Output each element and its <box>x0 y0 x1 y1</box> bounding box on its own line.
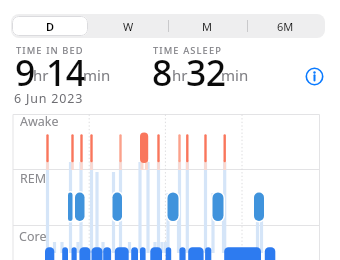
staticText: W <box>123 19 134 34</box>
staticText: 9 <box>15 48 35 96</box>
staticText: TIME IN BED <box>16 44 84 57</box>
staticText: Awake <box>20 113 59 130</box>
button[interactable]: 6M <box>246 14 325 38</box>
button[interactable]: W <box>89 14 167 38</box>
staticText: 32 <box>186 48 226 96</box>
staticText: hr <box>33 65 49 85</box>
staticText: D <box>46 19 55 34</box>
staticText: 6M <box>277 19 294 34</box>
staticText: TIME ASLEEP <box>153 44 222 57</box>
button[interactable]: D <box>11 14 89 38</box>
staticText: Core <box>19 228 47 245</box>
staticText: 8 <box>152 48 172 96</box>
staticText: min <box>83 65 111 85</box>
staticText: hr <box>172 65 188 85</box>
button[interactable]: M <box>167 14 246 38</box>
staticText: min <box>221 65 249 85</box>
button[interactable] <box>305 67 324 86</box>
staticText: 14 <box>46 48 86 96</box>
staticText: 6 Jun 2023 <box>14 90 84 107</box>
staticText: M <box>202 19 212 34</box>
staticText: REM <box>20 170 47 187</box>
